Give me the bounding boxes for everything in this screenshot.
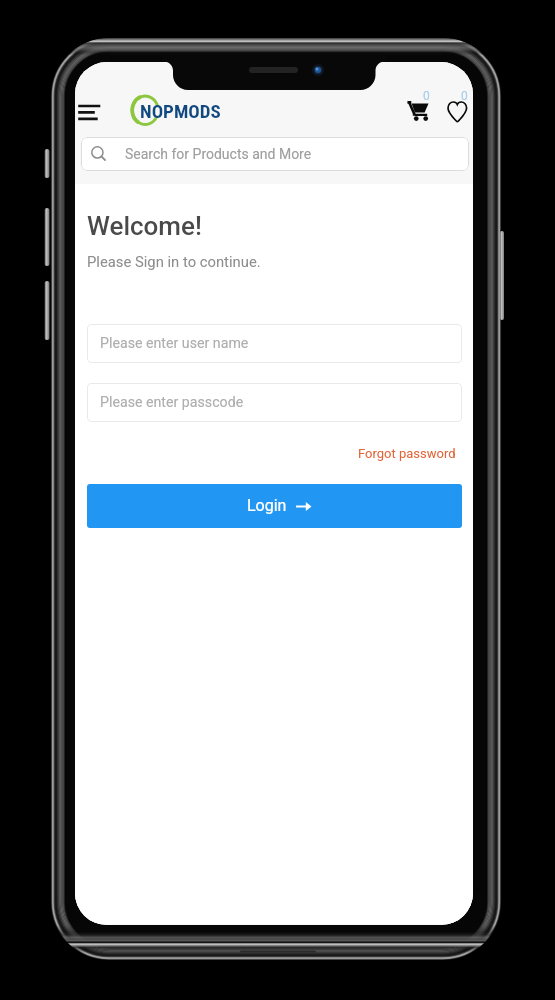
staticText: Forgot password	[358, 446, 456, 461]
staticText: Login	[247, 496, 287, 515]
button[interactable]: Please enter passcode	[87, 383, 462, 422]
button[interactable]: Menu	[75, 83, 111, 131]
staticText: Welcome!	[87, 211, 202, 241]
staticText: NOPMODS	[140, 100, 221, 122]
button[interactable]: Wishlist	[439, 88, 473, 126]
button[interactable]: Please enter user name	[87, 324, 462, 363]
button[interactable]: Search for Products and More	[81, 137, 469, 171]
button[interactable]: Login	[87, 484, 462, 528]
staticText: Please enter user name	[100, 335, 249, 352]
button[interactable]: Forgot password	[353, 442, 461, 465]
button[interactable]: Cart	[401, 88, 437, 126]
staticText: Please Sign in to continue.	[87, 253, 261, 270]
button[interactable]: NOPMODS home	[128, 95, 220, 125]
staticText: 0	[423, 89, 430, 103]
staticText: Please enter passcode	[100, 394, 244, 411]
staticText: 0	[461, 89, 468, 103]
staticText: Search for Products and More	[125, 146, 312, 162]
